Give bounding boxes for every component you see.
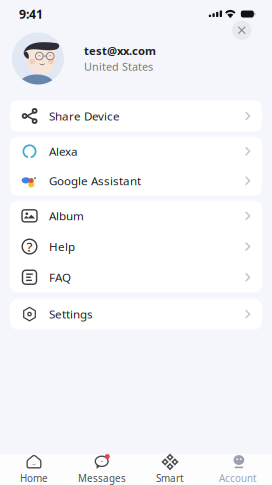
button[interactable]: Alexa: [10, 136, 262, 166]
button[interactable]: Google Assistant: [10, 166, 262, 195]
button[interactable]: Share Device: [10, 100, 262, 131]
button[interactable]: Home: [0, 449, 68, 485]
staticText: Smart: [156, 471, 184, 485]
staticText: Help: [49, 239, 75, 254]
button[interactable]: Account: [204, 449, 272, 485]
button[interactable]: test@xx.com: [0, 32, 272, 84]
staticText: ?: [26, 238, 32, 255]
button[interactable]: ?: [10, 231, 262, 262]
staticText: Home: [20, 471, 48, 485]
button[interactable]: Smart: [136, 449, 204, 485]
staticText: Album: [49, 208, 84, 224]
button[interactable]: Album: [10, 200, 262, 231]
staticText: Messages: [78, 471, 126, 485]
staticText: Share Device: [49, 108, 120, 124]
staticText: Account: [219, 471, 257, 485]
staticText: 9:41: [19, 6, 43, 22]
staticText: Settings: [49, 306, 93, 322]
staticText: test@xx.com: [84, 43, 156, 58]
button[interactable]: Messages: [68, 449, 136, 485]
staticText: United States: [84, 59, 153, 74]
staticText: Google Assistant: [49, 173, 141, 189]
staticText: FAQ: [49, 269, 71, 285]
button[interactable]: FAQ: [10, 262, 262, 293]
button[interactable]: Settings: [10, 299, 262, 330]
staticText: Alexa: [49, 143, 78, 159]
button[interactable]: Close: [232, 20, 251, 40]
